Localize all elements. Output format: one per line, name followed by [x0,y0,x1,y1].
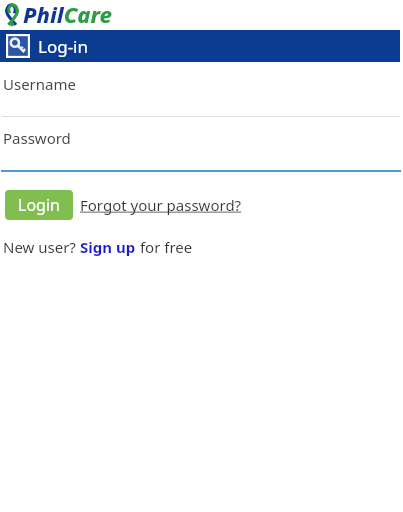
button[interactable]: Log-in [0,30,400,62]
staticText: for free [136,237,193,257]
button[interactable]: Username [0,74,403,117]
staticText: New user? [3,237,80,257]
staticText: Forgot your password? [80,195,242,215]
other: Log-in [6,34,30,58]
staticText: Sign up [80,237,136,257]
button[interactable]: Sign up [80,237,136,257]
staticText: Password [3,128,71,148]
staticText: Login [18,194,60,216]
button[interactable]: Password [0,128,403,172]
staticText: PhilCare [23,0,113,29]
button[interactable]: Forgot your password? [80,191,242,219]
staticText: Log-in [38,35,89,58]
staticText: Username [3,74,76,94]
button[interactable]: Login [5,190,73,220]
